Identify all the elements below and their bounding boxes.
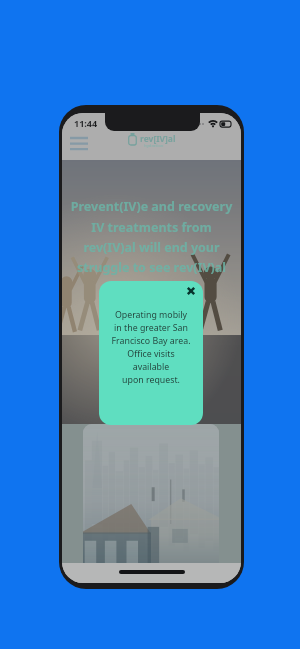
button[interactable]: Menu — [68, 135, 91, 152]
button[interactable]: Close — [183, 283, 199, 299]
staticText: Prevent(IV)e and recovery IV treatments … — [62, 198, 241, 275]
staticText: 11:44 — [74, 117, 98, 129]
staticText: Operating mobily in the greater San Fran… — [99, 309, 203, 386]
staticText: rev[IV]al — [140, 133, 176, 145]
staticText: hydration — [144, 143, 164, 149]
